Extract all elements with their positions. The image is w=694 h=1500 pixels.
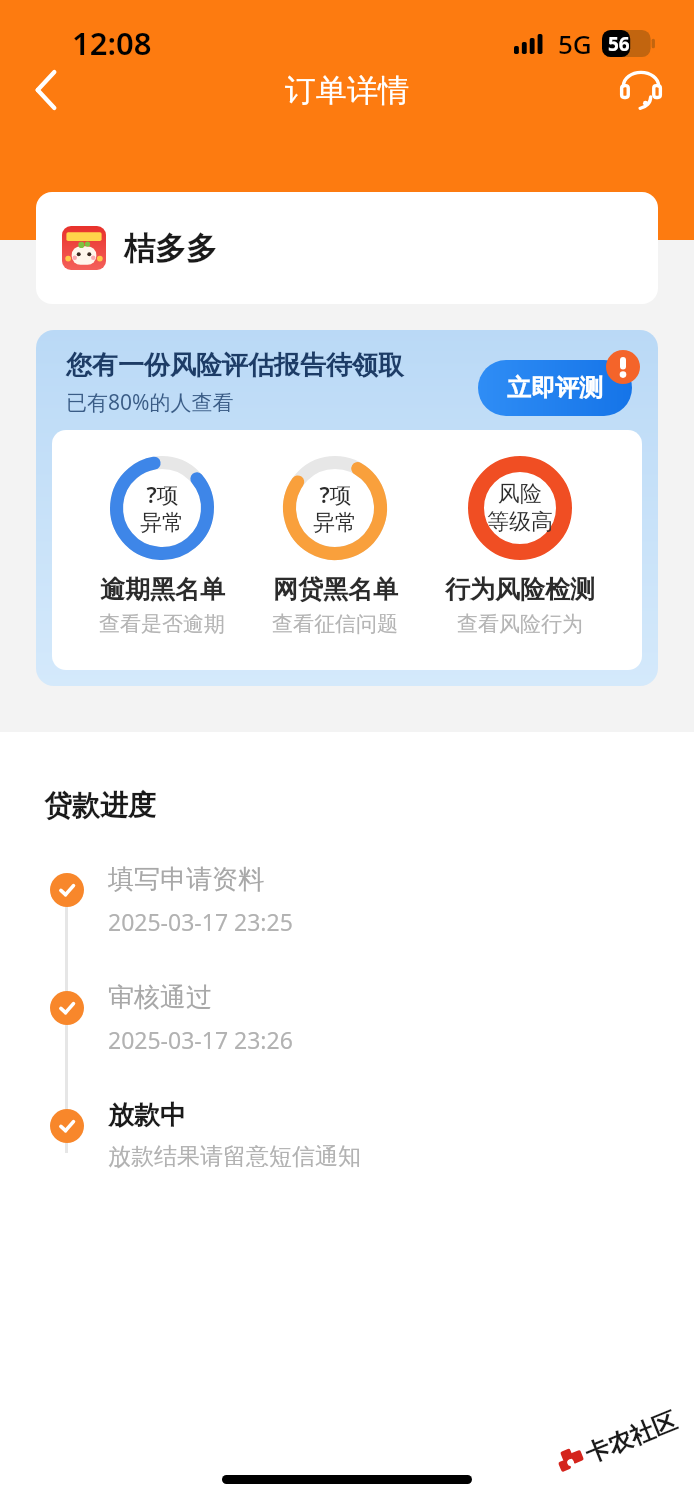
button[interactable]: 审核通过 [0, 975, 293, 1055]
staticText: 12:08 [72, 22, 152, 64]
staticText: 网贷黑名单 [273, 574, 398, 605]
staticText: 行为风险检测 [445, 574, 595, 605]
staticText: 2025-03-17 23:25 [108, 906, 293, 937]
staticText: ?项 [319, 479, 352, 509]
button[interactable]: 放款中 [0, 1093, 361, 1171]
button[interactable]: 您有一份风险评估报告待领取 [36, 330, 658, 686]
button[interactable]: Back [16, 60, 76, 120]
staticText: 贷款进度 [44, 788, 156, 823]
button[interactable]: 风险 [445, 454, 595, 637]
staticText: 查看风险行为 [457, 611, 583, 637]
staticText: 5G [558, 26, 592, 61]
button[interactable]: ?项 [99, 454, 225, 637]
staticText: 查看是否逾期 [99, 611, 225, 637]
button[interactable]: 桔多多 [36, 192, 658, 304]
staticText: 订单详情 [285, 71, 409, 110]
staticText: 56 [608, 31, 630, 57]
staticText: 2025-03-17 23:26 [108, 1024, 293, 1055]
staticText: 风险 [498, 480, 542, 508]
staticText: 放款结果请留意短信通知 [108, 1142, 361, 1171]
staticText: 查看征信问题 [272, 611, 398, 637]
staticText: 立即评测 [507, 373, 603, 403]
staticText: 异常 [313, 509, 357, 537]
staticText: 已有80%的人查看 [66, 388, 234, 417]
staticText: 卡农社区 [581, 1406, 681, 1469]
button[interactable]: Customer service [610, 59, 672, 121]
button[interactable]: 立即评测 [478, 360, 632, 416]
button[interactable]: 填写申请资料 [0, 857, 293, 937]
staticText: 放款中 [108, 1099, 186, 1132]
staticText: 审核通过 [108, 981, 212, 1014]
staticText: 桔多多 [124, 229, 217, 268]
staticText: 逾期黑名单 [100, 574, 225, 605]
staticText: 异常 [140, 509, 184, 537]
button[interactable]: ?项 [272, 454, 398, 637]
staticText: 填写申请资料 [108, 863, 264, 896]
staticText: ?项 [146, 479, 179, 509]
staticText: 等级高 [487, 508, 553, 536]
staticText: 您有一份风险评估报告待领取 [66, 349, 404, 382]
